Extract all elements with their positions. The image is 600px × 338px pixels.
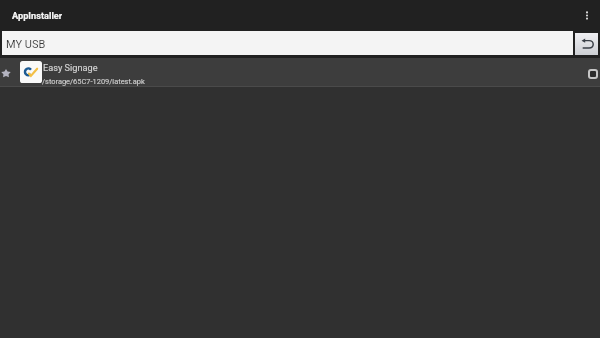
button[interactable] [0, 58, 600, 86]
staticText: AppInstaller [12, 10, 63, 21]
button[interactable]: Enter [575, 33, 598, 55]
staticText: MY USB [6, 38, 46, 51]
button[interactable]: Select item [580, 59, 600, 86]
staticText: Easy Signage [43, 62, 98, 73]
staticText: /storage/65C7-1209/latest.apk [42, 77, 145, 86]
button[interactable]: MY USB [2, 31, 573, 55]
button[interactable]: Favorite [0, 59, 18, 86]
button[interactable]: More options [576, 3, 597, 28]
